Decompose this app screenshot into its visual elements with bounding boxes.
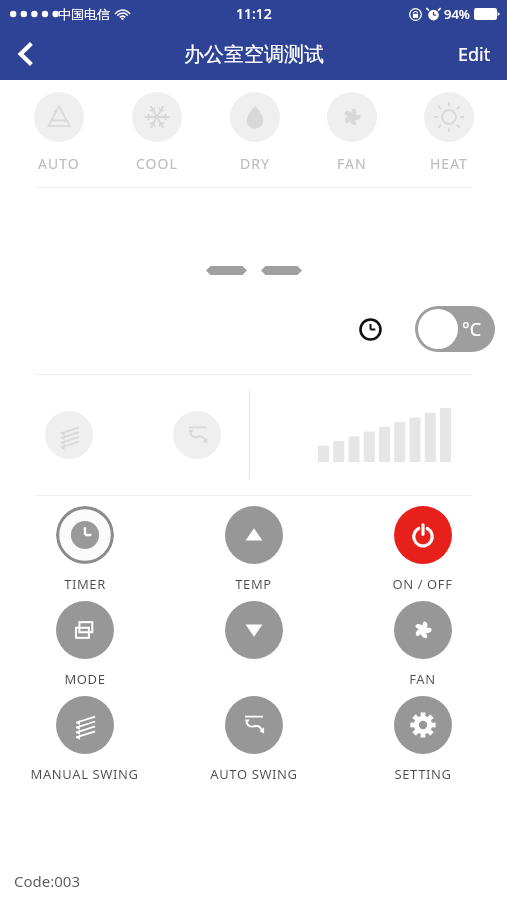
staticText: TIMER xyxy=(64,575,106,593)
button[interactable]: DRY xyxy=(206,92,303,173)
staticText: FAN xyxy=(409,670,436,688)
staticText: COOL xyxy=(136,154,178,173)
button[interactable]: FAN xyxy=(338,601,507,688)
button[interactable]: °C xyxy=(415,306,495,352)
staticText: DRY xyxy=(240,154,270,173)
staticText: Edit xyxy=(458,42,491,67)
button[interactable]: Manual swing xyxy=(45,411,93,459)
staticText: TEMP xyxy=(235,575,272,593)
staticText: ON / OFF xyxy=(392,575,453,593)
button[interactable]: Back xyxy=(0,28,54,80)
button[interactable]: COOL xyxy=(108,92,206,173)
button[interactable]: MANUAL SWING xyxy=(0,696,169,783)
button[interactable]: ON / OFF xyxy=(338,506,507,593)
button[interactable]: Timer xyxy=(353,312,387,346)
button[interactable]: Fan speed xyxy=(318,408,451,462)
button[interactable]: Auto swing xyxy=(173,411,221,459)
button[interactable]: MODE xyxy=(0,601,169,688)
button[interactable]: HEAT xyxy=(400,92,497,173)
button[interactable]: Edit xyxy=(442,32,507,77)
button[interactable]: AUTO SWING xyxy=(169,696,338,783)
staticText: SETTING xyxy=(394,765,452,783)
button[interactable]: AUTO xyxy=(10,92,108,173)
staticText: AUTO xyxy=(38,154,80,173)
staticText: AUTO SWING xyxy=(210,765,298,783)
button[interactable]: SETTING xyxy=(338,696,507,783)
staticText: MODE xyxy=(64,670,106,688)
button[interactable]: FAN xyxy=(303,92,400,173)
staticText: HEAT xyxy=(430,154,468,173)
staticText: MANUAL SWING xyxy=(30,765,139,783)
staticText: 94% xyxy=(444,5,470,23)
staticText: 中国电信 xyxy=(58,6,110,22)
staticText: °C xyxy=(462,317,482,342)
staticText: Code:003 xyxy=(14,871,81,891)
button[interactable]: TEMP xyxy=(169,506,338,593)
staticText: FAN xyxy=(337,154,367,173)
staticText: 办公室空调测试 xyxy=(184,42,324,67)
button[interactable]: TIMER xyxy=(0,506,169,593)
button[interactable] xyxy=(169,601,338,688)
staticText: 11:12 xyxy=(236,4,272,23)
